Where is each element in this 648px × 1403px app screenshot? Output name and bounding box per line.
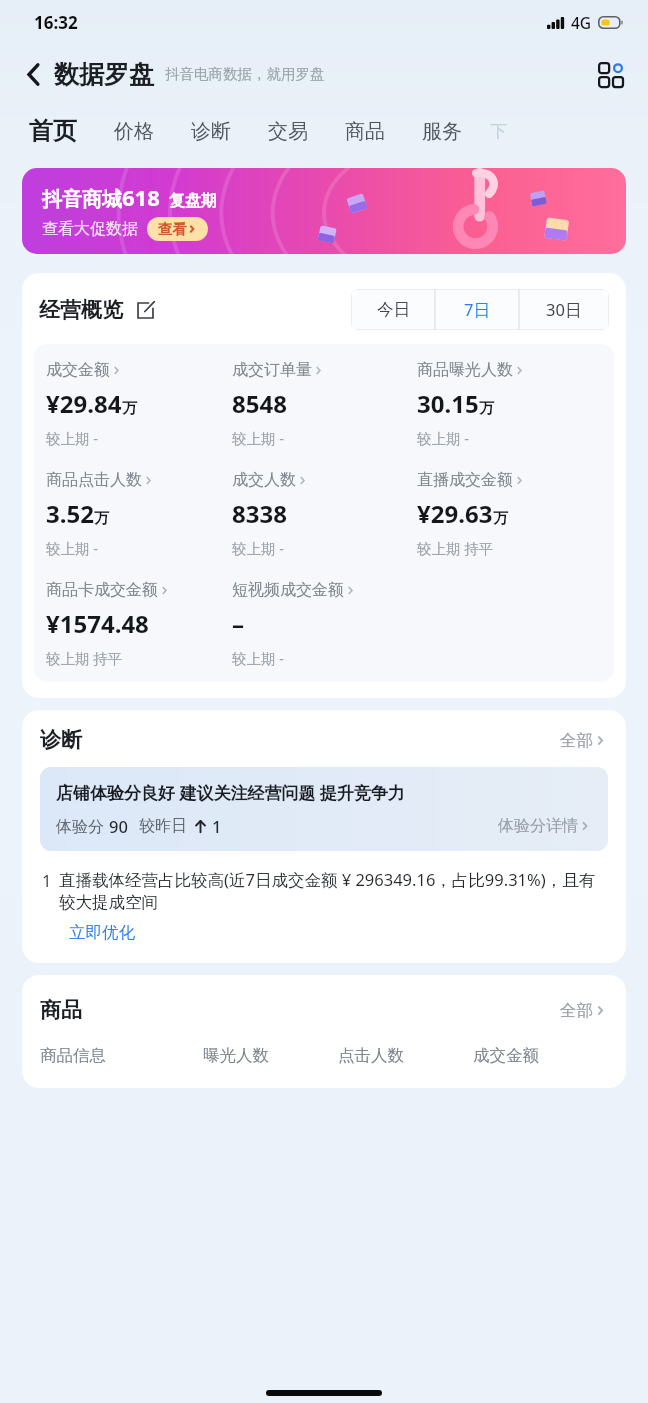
staticText: 万 (493, 509, 508, 528)
staticText: 90 (109, 815, 128, 837)
staticText: 商品点击人数 (46, 470, 142, 490)
staticText: 万 (94, 509, 109, 528)
staticText: 商品卡成交金额 (46, 580, 158, 600)
staticText: – (232, 607, 244, 640)
staticText: 商品曝光人数 (417, 360, 513, 380)
staticText: 16:32 (34, 11, 78, 34)
staticText: 复盘期 (169, 191, 217, 211)
button[interactable]: 成交订单量 (232, 360, 325, 380)
staticText: 较上期 持平 (46, 648, 123, 668)
button[interactable]: 成交人数 (232, 470, 309, 490)
staticText: 商品 (345, 119, 385, 144)
staticText: 店铺体验分良好 建议关注经营问题 提升竞争力 (56, 781, 405, 804)
staticText: 立即优化 (69, 922, 135, 943)
staticText: 今日 (377, 299, 410, 320)
staticText: 较上期 - (46, 538, 98, 558)
staticText: 较上期 - (232, 538, 284, 558)
button[interactable]: Back (16, 56, 52, 92)
staticText: 618 (122, 182, 160, 212)
button[interactable]: 7日 (435, 289, 519, 330)
staticText: 体验分详情 (498, 816, 578, 836)
button[interactable]: 店铺体验分良好 建议关注经营问题 提升竞争力 (40, 767, 608, 851)
staticText: 8338 (232, 497, 287, 530)
staticText: 较上期 持平 (417, 538, 494, 558)
staticText: 较上期 - (417, 428, 469, 448)
staticText: 抖音电商数据，就用罗盘 (165, 65, 325, 83)
staticText: 直播载体经营占比较高(近7日成交金额 ¥ 296349.16，占比99.31%)… (59, 868, 606, 913)
button[interactable]: 商品 (336, 111, 394, 152)
button[interactable]: 立即优化 (59, 922, 135, 943)
staticText: 30日 (546, 298, 582, 321)
staticText: ¥29.63 (417, 497, 493, 530)
button[interactable]: 成交金额 (46, 360, 123, 380)
staticText: 较上期 - (46, 428, 98, 448)
staticText: 8548 (232, 387, 287, 420)
staticText: 4G (571, 12, 592, 33)
staticText: 交易 (268, 119, 308, 144)
staticText: 商品 (40, 997, 82, 1023)
staticText: ¥1574.48 (46, 607, 149, 640)
staticText: 诊断 (40, 727, 82, 753)
staticText: 成交人数 (232, 470, 296, 490)
button[interactable]: 诊断 (182, 111, 240, 152)
staticText: 下 (490, 121, 507, 142)
button[interactable]: 今日 (351, 289, 435, 330)
button[interactable]: 短视频成交金额 (232, 580, 357, 600)
staticText: 服务 (422, 119, 462, 144)
staticText: ¥29.84 (46, 387, 122, 420)
button[interactable]: 商品曝光人数 (417, 360, 526, 380)
staticText: 成交金额 (46, 360, 110, 380)
button[interactable]: 全部 (560, 730, 608, 751)
staticText: 诊断 (191, 119, 231, 144)
button[interactable]: Apps (588, 52, 632, 96)
staticText: 成交金额 (473, 1045, 608, 1066)
button[interactable]: 抖音商城 (22, 168, 626, 254)
button[interactable]: 首页 (20, 108, 86, 154)
staticText: 经营概览 (39, 297, 123, 323)
button[interactable]: 直播成交金额 (417, 470, 526, 490)
button[interactable]: 商品卡成交金额 (46, 580, 171, 600)
button[interactable]: 全部 (560, 1000, 608, 1021)
staticText: 30.15 (417, 387, 479, 420)
button[interactable]: 查看 (147, 217, 208, 241)
staticText: 7日 (464, 298, 490, 321)
button[interactable]: 服务 (413, 111, 471, 152)
staticText: 3.52 (46, 497, 94, 530)
staticText: 1 (212, 815, 222, 837)
staticText: 较上期 - (232, 428, 284, 448)
staticText: 商品信息 (40, 1045, 203, 1066)
staticText: 体验分 (56, 815, 109, 837)
staticText: 直播成交金额 (417, 470, 513, 490)
button[interactable]: 30日 (519, 289, 609, 330)
button[interactable]: 价格 (105, 111, 163, 152)
staticText: 短视频成交金额 (232, 580, 344, 600)
staticText: 抖音商城 (42, 187, 122, 212)
staticText: 价格 (114, 119, 154, 144)
staticText: 点击人数 (338, 1045, 473, 1066)
staticText: 1 (42, 869, 52, 891)
button[interactable]: 交易 (259, 111, 317, 152)
button[interactable]: 商品点击人数 (46, 470, 155, 490)
staticText: 较上期 - (232, 648, 284, 668)
staticText: 万 (122, 399, 137, 418)
staticText: 全部 (560, 730, 593, 751)
staticText: 全部 (560, 1000, 593, 1021)
staticText: 曝光人数 (203, 1045, 338, 1066)
staticText: 数据罗盘 (54, 59, 154, 90)
staticText: 首页 (29, 116, 77, 146)
button[interactable]: Edit overview (132, 297, 158, 323)
staticText: 较昨日 (139, 816, 187, 836)
staticText: 成交订单量 (232, 360, 312, 380)
staticText: 万 (479, 399, 494, 418)
staticText: 查看 (158, 220, 187, 238)
staticText: 查看大促数据 (42, 219, 138, 239)
